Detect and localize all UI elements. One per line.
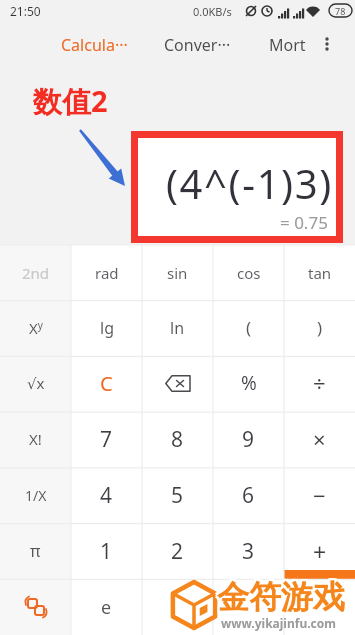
staticText: sin	[167, 263, 188, 283]
button[interactable]	[213, 579, 284, 635]
button[interactable]	[142, 355, 213, 411]
button[interactable]: Calcula···	[55, 28, 134, 62]
staticText: 金符游戏	[217, 579, 345, 619]
staticText: 7	[100, 425, 113, 454]
button[interactable]: sin	[142, 245, 213, 300]
button[interactable]: tan	[284, 245, 355, 300]
staticText: tan	[308, 263, 332, 283]
button[interactable]: 9	[213, 411, 284, 467]
staticText: +	[313, 536, 327, 567]
staticText: Mort	[269, 34, 306, 56]
button[interactable]: +	[284, 523, 355, 579]
button[interactable]	[142, 579, 213, 635]
staticText: 金符游戏	[217, 577, 345, 617]
button[interactable]: 7	[71, 411, 142, 467]
staticText: 3	[242, 537, 255, 566]
button[interactable]	[317, 32, 337, 56]
staticText: 9	[242, 425, 255, 454]
button[interactable]: cos	[213, 245, 284, 300]
staticText: 5	[171, 481, 184, 510]
button[interactable]: 2nd	[0, 245, 71, 300]
button[interactable]: 1	[71, 523, 142, 579]
staticText: 金符游戏	[219, 579, 347, 619]
staticText: %	[241, 370, 257, 396]
button[interactable]: C	[71, 355, 142, 411]
staticText: 金符游戏	[215, 575, 343, 615]
button[interactable]: ×	[284, 411, 355, 467]
button[interactable]: ln	[142, 300, 213, 355]
staticText: −	[313, 480, 326, 510]
button[interactable]: π	[0, 523, 71, 579]
staticText: 金符游戏	[217, 577, 345, 617]
button[interactable]: )	[284, 300, 355, 355]
staticText: 4	[100, 481, 113, 510]
button[interactable]	[0, 579, 71, 635]
staticText: rad	[95, 263, 119, 283]
button[interactable]: Mort	[263, 28, 312, 62]
button[interactable]: 3	[213, 523, 284, 579]
button[interactable]: ÷	[284, 355, 355, 411]
button[interactable]: 2	[142, 523, 213, 579]
button[interactable]: lg	[71, 300, 142, 355]
staticText: Calcula···	[61, 34, 128, 56]
staticText: X!	[29, 429, 42, 449]
staticText: 数值2	[33, 81, 108, 121]
staticText: 1	[100, 537, 113, 566]
button[interactable]: (	[213, 300, 284, 355]
staticText: 78	[335, 5, 346, 17]
button[interactable]: e	[71, 579, 142, 635]
button[interactable]: Xy	[0, 300, 71, 355]
staticText: 0.0KB/s	[193, 4, 232, 19]
staticText: 21:50	[10, 3, 41, 19]
button[interactable]: −	[284, 467, 355, 523]
staticText: www.yikajinfu.com	[221, 615, 336, 631]
staticText: 金符游戏	[217, 575, 345, 615]
staticText: ln	[170, 317, 185, 339]
staticText: 8	[171, 425, 184, 454]
button[interactable]: X!	[0, 411, 71, 467]
staticText: (4^(-1)3)	[166, 156, 333, 210]
button[interactable]: 1/X	[0, 467, 71, 523]
staticText: = 0.75	[280, 211, 328, 234]
staticText: 2nd	[22, 263, 50, 283]
staticText: 2	[171, 537, 184, 566]
button[interactable]: 6	[213, 467, 284, 523]
staticText: cos	[237, 263, 261, 283]
button[interactable]: 4	[71, 467, 142, 523]
staticText: )	[317, 316, 323, 339]
staticText: √x	[27, 373, 45, 393]
button[interactable]: %	[213, 355, 284, 411]
staticText: 金符游戏	[219, 575, 347, 615]
button[interactable]: 5	[142, 467, 213, 523]
staticText: (	[246, 316, 252, 339]
staticText: 金符游戏	[219, 577, 347, 617]
staticText: ×	[313, 424, 326, 454]
button[interactable]: rad	[71, 245, 142, 300]
staticText: e	[101, 595, 112, 620]
staticText: 金符游戏	[215, 579, 343, 619]
staticText: π	[30, 540, 41, 562]
staticText: C	[100, 370, 113, 397]
staticText: Xy	[29, 318, 43, 338]
staticText: 6	[242, 481, 255, 510]
staticText: Conver···	[164, 34, 231, 56]
staticText: lg	[100, 317, 114, 339]
staticText: 1/X	[25, 486, 47, 505]
staticText: 金符游戏	[215, 577, 343, 617]
button[interactable]	[284, 579, 355, 635]
button[interactable]: 8	[142, 411, 213, 467]
button[interactable]: √x	[0, 355, 71, 411]
button[interactable]: Conver···	[158, 28, 237, 62]
staticText: ÷	[313, 368, 326, 398]
